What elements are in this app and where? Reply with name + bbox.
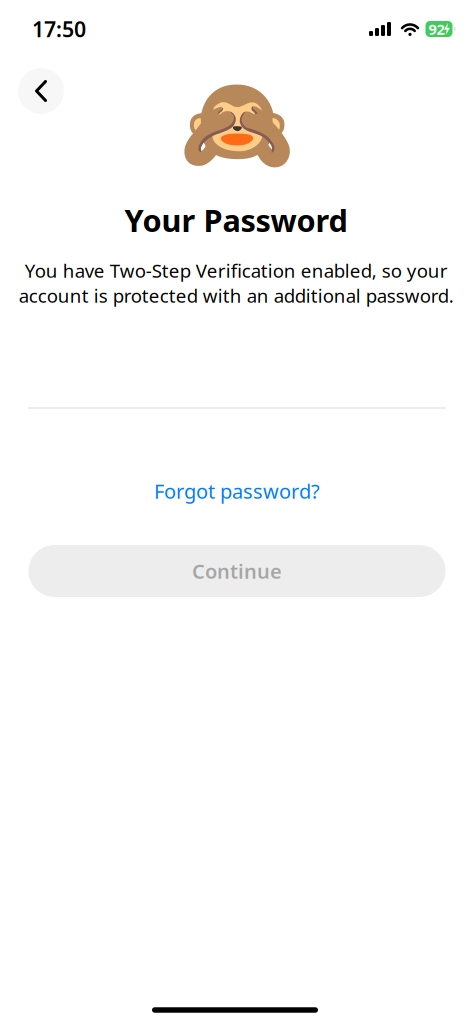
button[interactable]: Forgot password? bbox=[154, 478, 320, 504]
staticText: 17:50 bbox=[32, 15, 86, 43]
staticText: 92 bbox=[428, 19, 444, 39]
staticText: You have Two-Step Verification enabled, … bbox=[18, 258, 453, 308]
button[interactable]: Continue bbox=[28, 545, 445, 597]
staticText: Forgot password? bbox=[154, 478, 320, 504]
staticText: 🙈 bbox=[179, 71, 295, 177]
button[interactable]: Back bbox=[18, 68, 64, 114]
staticText: Continue bbox=[192, 558, 282, 584]
staticText: Your Password bbox=[124, 200, 347, 240]
